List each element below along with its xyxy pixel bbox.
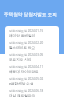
button[interactable]: 당첨자발표일 2024.06.18 [7,89,57,100]
staticText: 해운대 자이아파트 [9,69,39,74]
button[interactable]: 당첨자발표일 2024.03.05 [7,53,57,65]
staticText: 더샵 센트럴파크 [9,93,36,98]
staticText: 당첨자발표일 2024.01.15 [9,29,44,33]
button[interactable]: 당첨자발표일 2024.02.20 [7,41,57,53]
staticText: 푸르지오 시티 [9,57,32,62]
staticText: 주택청약 당첨자발표 조회 서비스 [4,11,60,17]
staticText: 당첨자발표일 2024.05.02 [9,77,44,81]
button[interactable]: 당첨자발표일 2024.04.11 [7,65,57,77]
staticText: 당첨자발표일 2024.03.05 [9,53,44,57]
button[interactable]: 당첨자발표일 2024.01.15 [7,29,57,41]
button[interactable]: 당첨자발표일 2024.05.02 [7,77,57,89]
staticText: 힐스테이트 판교 [9,45,36,50]
staticText: 당첨자발표일 2024.02.20 [9,41,44,45]
staticText: e편한세상 수성 [9,81,34,86]
staticText: 당첨자발표일 2024.06.18 [9,89,44,93]
staticText: 래미안 원베일리 [9,33,36,38]
staticText: 당첨자발표일 2024.04.11 [9,65,44,69]
